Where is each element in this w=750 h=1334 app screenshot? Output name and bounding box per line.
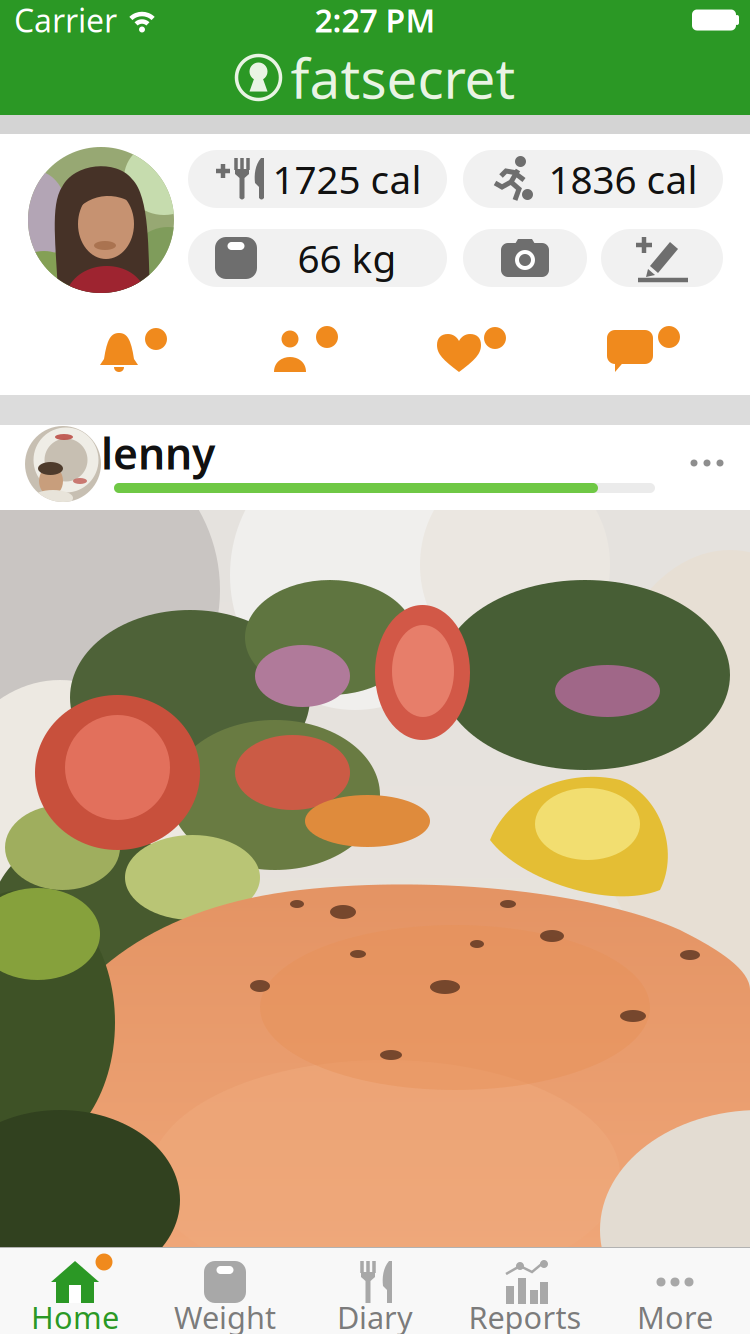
staticText: 2:27 PM [314,0,435,41]
button[interactable] [268,330,312,374]
button[interactable]: Reports [450,1247,600,1334]
staticText: 66 kg [297,232,396,284]
button[interactable]: lenny [101,425,215,481]
staticText: Reports [468,1297,581,1334]
staticText: fatsecret [290,41,515,114]
button[interactable]: 1836 cal [463,150,723,208]
staticText: 1836 cal [548,153,697,205]
button[interactable] [436,332,482,372]
staticText: More [637,1297,713,1334]
button[interactable] [677,443,737,483]
button[interactable] [28,147,174,293]
button[interactable] [601,229,723,287]
staticText: Diary [337,1297,413,1334]
button[interactable] [0,510,750,1247]
button[interactable]: Weight [150,1247,300,1334]
button[interactable]: More [600,1247,750,1334]
staticText: Carrier [14,0,117,41]
button[interactable] [463,229,587,287]
staticText: 1725 cal [272,153,421,205]
button[interactable] [97,329,141,375]
button[interactable]: 1725 cal [188,150,447,208]
button[interactable]: 66 kg [188,229,447,287]
button[interactable] [607,330,653,374]
staticText: lenny [101,425,215,481]
staticText: Weight [174,1297,276,1334]
button[interactable]: fatsecret [234,41,515,114]
button[interactable]: Home [0,1247,150,1334]
button[interactable]: Diary [300,1247,450,1334]
button[interactable] [25,426,101,502]
staticText: Home [31,1297,119,1334]
